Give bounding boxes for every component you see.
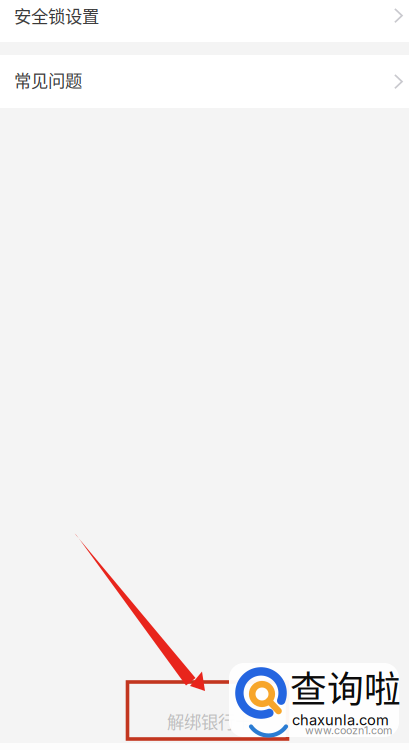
staticText: 安全锁设置	[14, 3, 99, 28]
staticText: 解绑银行卡	[167, 708, 252, 734]
button[interactable]: 安全锁设置	[0, 0, 409, 42]
button[interactable]: 常见问题	[0, 55, 409, 108]
staticText: 常见问题	[14, 67, 82, 93]
button[interactable]: 解绑银行卡	[0, 693, 409, 743]
staticText: 查询啦	[290, 660, 401, 713]
staticText: www.coozn1.com	[305, 724, 392, 737]
staticText: chaxunla.com	[292, 711, 389, 729]
